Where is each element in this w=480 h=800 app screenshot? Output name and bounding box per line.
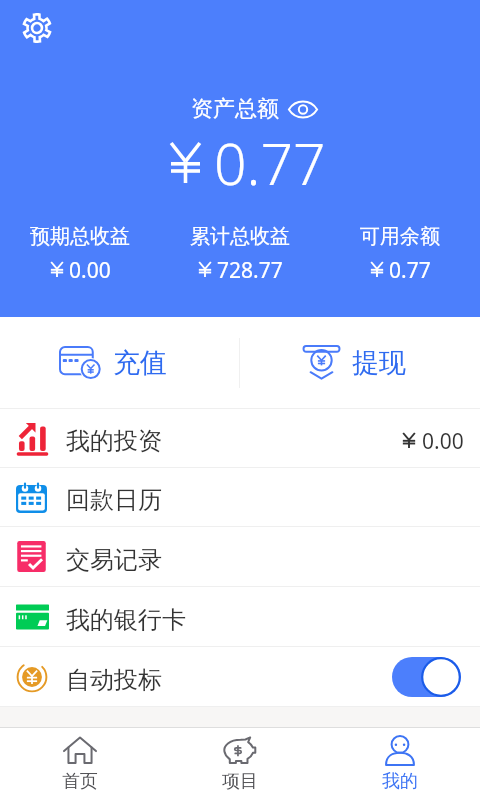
- staticText: 提现: [352, 346, 406, 380]
- button[interactable]: Settings: [18, 9, 56, 47]
- button[interactable]: 我的: [320, 728, 480, 800]
- button[interactable]: 交易记录: [0, 527, 480, 586]
- staticText: 资产总额: [191, 95, 279, 123]
- button[interactable]: 充值: [0, 317, 239, 408]
- button[interactable]: 我的银行卡: [0, 587, 480, 646]
- button[interactable]: 自动投标: [0, 647, 480, 706]
- staticText: 充值: [113, 346, 167, 380]
- staticText: 预期总收益: [30, 224, 130, 249]
- button[interactable]: 回款日历: [0, 468, 480, 526]
- staticText: 交易记录: [66, 545, 162, 575]
- staticText: 0.77: [389, 256, 431, 285]
- staticText: 0.77: [214, 124, 326, 202]
- staticText: 我的: [382, 770, 418, 793]
- staticText: 0.00: [422, 427, 464, 456]
- staticText: 首页: [62, 770, 98, 793]
- button[interactable]: 我的投资: [0, 409, 480, 467]
- staticText: 累计总收益: [190, 224, 290, 249]
- button[interactable]: 项目: [160, 728, 320, 800]
- button[interactable]: 提现: [240, 317, 480, 408]
- button[interactable]: Auto invest toggle: [392, 657, 461, 697]
- button[interactable]: 首页: [0, 728, 160, 800]
- staticText: 自动投标: [66, 665, 162, 695]
- staticText: 回款日历: [66, 485, 162, 515]
- staticText: 项目: [222, 770, 258, 793]
- staticText: 728.77: [217, 256, 283, 285]
- staticText: 可用余额: [360, 224, 440, 249]
- staticText: 我的银行卡: [66, 605, 186, 635]
- staticText: 0.00: [69, 256, 111, 285]
- staticText: 我的投资: [66, 426, 162, 456]
